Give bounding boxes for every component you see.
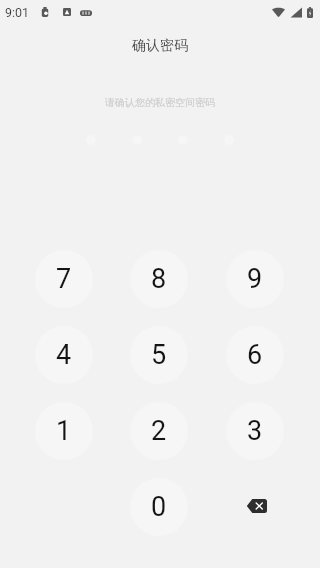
button[interactable]: 3: [226, 402, 284, 460]
button[interactable]: 2: [130, 402, 188, 460]
staticText: 9:01: [5, 5, 30, 20]
button[interactable]: 7: [35, 250, 93, 308]
button[interactable]: 6: [226, 326, 284, 384]
button[interactable]: 1: [35, 402, 93, 460]
staticText: 请确认您的私密空间密码: [105, 96, 215, 109]
button[interactable]: 4: [35, 326, 93, 384]
staticText: 4: [56, 339, 72, 371]
button[interactable]: 8: [130, 250, 188, 308]
staticText: 1: [56, 415, 72, 447]
staticText: 8: [151, 263, 167, 295]
staticText: 3: [247, 415, 263, 447]
staticText: 6: [247, 339, 263, 371]
button[interactable]: 9: [226, 250, 284, 308]
staticText: 2: [151, 415, 167, 447]
button[interactable]: 0: [130, 478, 188, 536]
staticText: 确认密码: [132, 37, 188, 55]
staticText: 0: [151, 491, 167, 523]
button[interactable]: 5: [130, 326, 188, 384]
staticText: 9: [247, 263, 263, 295]
staticText: 5: [151, 339, 167, 371]
button[interactable]: Delete: [226, 478, 284, 536]
staticText: 7: [56, 263, 72, 295]
